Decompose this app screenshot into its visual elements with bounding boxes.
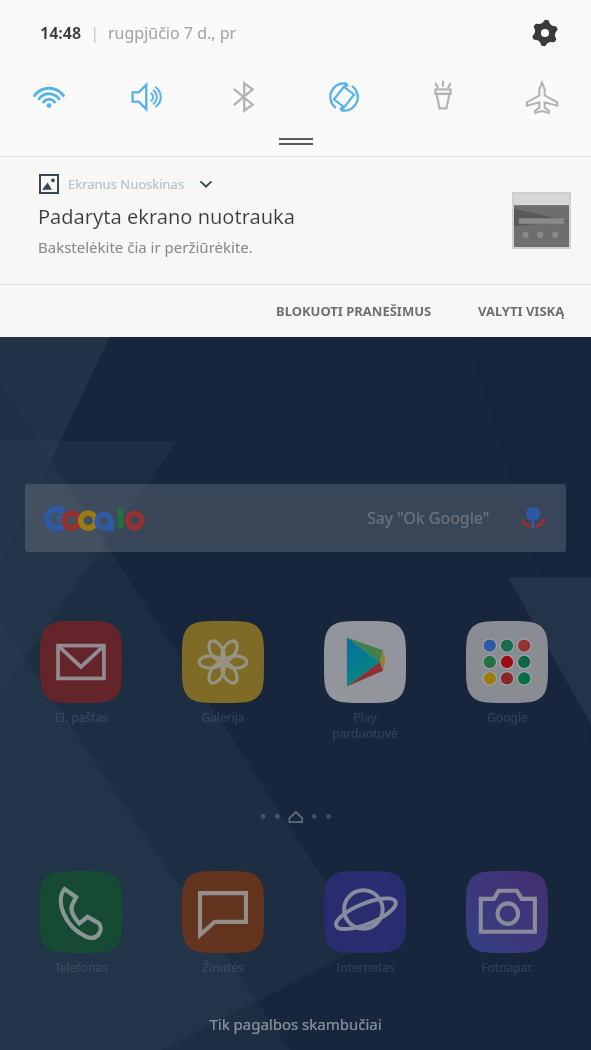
other: Expand (197, 175, 215, 193)
button[interactable]: Sound (98, 66, 196, 128)
button[interactable]: BLOKUOTI PRANEŠIMUS (260, 292, 448, 330)
staticText: Fotoapar. (481, 959, 534, 975)
button[interactable]: El. paštas (23, 621, 139, 725)
button[interactable]: Žinutės (165, 871, 281, 975)
button[interactable] (0, 128, 591, 156)
staticText: Telefonas (54, 959, 108, 975)
staticText: Say "Ok Google" (367, 507, 490, 529)
other: Voice search (522, 502, 544, 534)
staticText: Bakstelėkite čia ir peržiūrėkite. (38, 237, 253, 257)
staticText: Padaryta ekrano nuotrauka (38, 203, 296, 230)
button[interactable]: VALYTI VISKĄ (468, 292, 575, 330)
staticText: Play parduotuvė (332, 709, 398, 741)
staticText: VALYTI VISKĄ (478, 302, 565, 320)
staticText: Tik pagalbos skambučiai (209, 1014, 382, 1034)
button[interactable]: Telefonas (23, 871, 139, 975)
staticText: | (82, 22, 108, 44)
staticText: 14:48 (40, 22, 82, 44)
staticText: Google (487, 709, 528, 725)
button[interactable]: Settings (523, 11, 567, 55)
staticText: Internetas (336, 959, 395, 975)
button[interactable]: Flashlight (393, 66, 492, 128)
staticText: Ekranus Nuoskinas (68, 175, 185, 193)
button[interactable]: Internetas (307, 871, 423, 975)
button[interactable]: Google (449, 621, 565, 725)
button[interactable]: Galerija (165, 621, 281, 725)
staticText: Galerija (201, 709, 245, 725)
button[interactable]: Play parduotuvė (307, 621, 423, 741)
button[interactable]: Say "Ok Google" (25, 484, 566, 552)
button[interactable]: Wi-Fi (0, 66, 98, 128)
button[interactable]: Fotoapar. (449, 871, 565, 975)
button[interactable]: Auto rotate (294, 66, 393, 128)
staticText: El. paštas (55, 709, 108, 725)
staticText: BLOKUOTI PRANEŠIMUS (276, 302, 432, 320)
button[interactable]: Bluetooth (196, 66, 294, 128)
button[interactable]: Ekranus Nuoskinas (0, 157, 591, 284)
button[interactable]: Airplane mode (492, 66, 591, 128)
staticText: rugpjūčio 7 d., pr (108, 22, 237, 44)
staticText: Žinutės (202, 959, 244, 975)
